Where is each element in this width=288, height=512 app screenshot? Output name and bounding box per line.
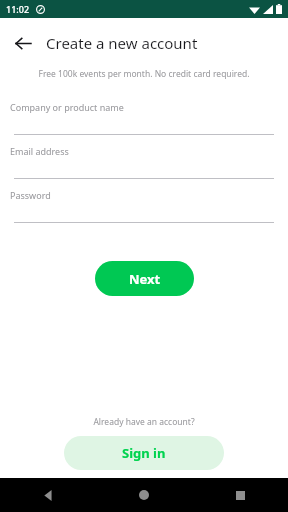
staticText: Create a new account xyxy=(46,33,198,53)
staticText: Next xyxy=(129,270,161,288)
staticText: Free 100k events per month. No credit ca… xyxy=(14,68,274,80)
staticText: Sign in xyxy=(122,444,166,462)
button[interactable]: Recent apps xyxy=(192,478,288,512)
staticText: 11:02 xyxy=(6,3,30,15)
staticText: Company or product name xyxy=(10,101,124,113)
button[interactable]: Sign in xyxy=(64,436,224,470)
staticText: Already have an account? xyxy=(0,416,288,428)
button[interactable]: Back xyxy=(8,28,38,58)
staticText: Email address xyxy=(10,145,69,157)
staticText: Password xyxy=(10,189,51,201)
button[interactable]: Next xyxy=(95,261,194,296)
button[interactable]: Back xyxy=(0,478,96,512)
button[interactable]: Home xyxy=(96,478,192,512)
